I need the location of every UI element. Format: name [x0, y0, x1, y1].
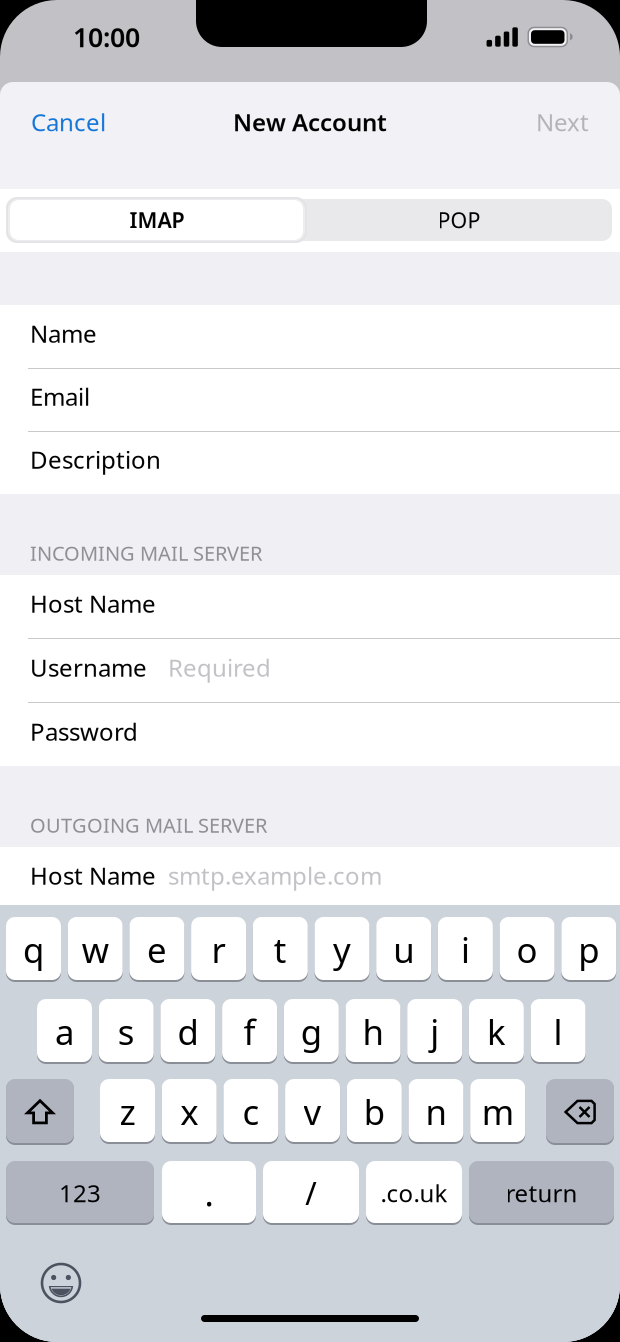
staticText: Required — [168, 652, 271, 683]
staticText: q — [23, 926, 44, 972]
staticText: IMAP — [129, 206, 184, 234]
button[interactable]: / — [263, 1161, 359, 1225]
staticText: a — [55, 1008, 74, 1054]
button[interactable]: Emoji — [42, 1264, 80, 1302]
button[interactable]: Name — [0, 305, 620, 368]
staticText: . — [204, 1170, 213, 1216]
staticText: e — [147, 926, 167, 972]
button[interactable]: n — [408, 1079, 463, 1144]
button[interactable]: x — [162, 1079, 217, 1144]
button[interactable]: Password — [0, 703, 620, 766]
button[interactable]: s — [99, 999, 154, 1064]
button[interactable]: g — [284, 999, 339, 1064]
button[interactable]: y — [314, 917, 369, 982]
button[interactable]: IMAP — [8, 199, 306, 241]
staticText: i — [461, 926, 470, 972]
button[interactable]: v — [285, 1079, 340, 1144]
staticText: g — [301, 1008, 322, 1054]
staticText: smtp.example.com — [168, 860, 382, 891]
staticText: return — [505, 1177, 577, 1209]
button[interactable]: Delete — [546, 1079, 614, 1145]
staticText: OUTGOING MAIL SERVER — [30, 812, 267, 838]
staticText: y — [333, 926, 351, 972]
button[interactable]: w — [68, 917, 123, 982]
button[interactable]: j — [407, 999, 462, 1064]
button[interactable]: Cancel — [0, 94, 160, 150]
button[interactable]: b — [347, 1079, 402, 1144]
button[interactable]: h — [345, 999, 400, 1064]
button[interactable]: t — [253, 917, 308, 982]
button[interactable]: e — [129, 917, 184, 982]
button[interactable]: Host Name — [0, 575, 620, 638]
button[interactable]: m — [470, 1079, 525, 1144]
button[interactable]: Description — [0, 431, 620, 494]
staticText: Password — [30, 716, 138, 747]
staticText: b — [364, 1088, 385, 1134]
staticText: k — [487, 1008, 506, 1054]
staticText: Description — [30, 444, 161, 475]
button[interactable]: Next — [460, 94, 620, 150]
button[interactable]: u — [376, 917, 431, 982]
staticText: .co.uk — [380, 1177, 447, 1209]
button[interactable]: r — [191, 917, 246, 982]
staticText: n — [425, 1088, 446, 1134]
staticText: t — [274, 926, 287, 972]
button[interactable]: return — [469, 1161, 614, 1225]
staticText: INCOMING MAIL SERVER — [30, 540, 262, 566]
button[interactable]: o — [500, 917, 555, 982]
staticText: h — [362, 1008, 383, 1054]
button[interactable]: . — [162, 1161, 256, 1225]
staticText: Next — [536, 106, 589, 138]
staticText: / — [305, 1172, 317, 1214]
button[interactable]: Username — [0, 639, 620, 702]
staticText: r — [212, 926, 226, 972]
staticText: POP — [437, 206, 480, 234]
staticText: Host Name — [30, 588, 156, 619]
button[interactable]: c — [223, 1079, 278, 1144]
staticText: 123 — [59, 1177, 101, 1209]
button[interactable]: p — [561, 917, 616, 982]
staticText: d — [177, 1008, 198, 1054]
staticText: x — [180, 1088, 198, 1134]
staticText: Host Name — [30, 860, 156, 891]
staticText: Cancel — [31, 106, 106, 138]
button[interactable]: .co.uk — [366, 1161, 462, 1225]
staticText: w — [82, 926, 109, 972]
button[interactable]: Host Name — [0, 847, 620, 910]
button[interactable]: POP — [306, 199, 612, 241]
button[interactable]: 123 — [6, 1161, 154, 1225]
staticText: c — [242, 1088, 259, 1134]
staticText: m — [482, 1088, 514, 1134]
staticText: 10:00 — [73, 19, 140, 55]
staticText: f — [244, 1008, 256, 1054]
staticText: s — [118, 1008, 135, 1054]
staticText: New Account — [233, 106, 387, 138]
button[interactable]: i — [438, 917, 493, 982]
staticText: Name — [30, 318, 97, 349]
staticText: p — [578, 926, 599, 972]
button[interactable]: f — [222, 999, 277, 1064]
button[interactable]: d — [160, 999, 215, 1064]
staticText: u — [393, 926, 414, 972]
button[interactable]: l — [531, 999, 586, 1064]
button[interactable]: z — [100, 1079, 155, 1144]
button[interactable]: k — [469, 999, 524, 1064]
button[interactable]: q — [6, 917, 61, 982]
staticText: Email — [30, 381, 90, 412]
button[interactable]: Email — [0, 368, 620, 431]
staticText: Username — [30, 652, 147, 683]
staticText: o — [517, 926, 538, 972]
staticText: v — [304, 1088, 322, 1134]
button[interactable]: a — [37, 999, 92, 1064]
button[interactable]: Shift — [6, 1079, 74, 1145]
staticText: l — [554, 1008, 563, 1054]
staticText: z — [119, 1088, 135, 1134]
staticText: j — [430, 1008, 439, 1054]
